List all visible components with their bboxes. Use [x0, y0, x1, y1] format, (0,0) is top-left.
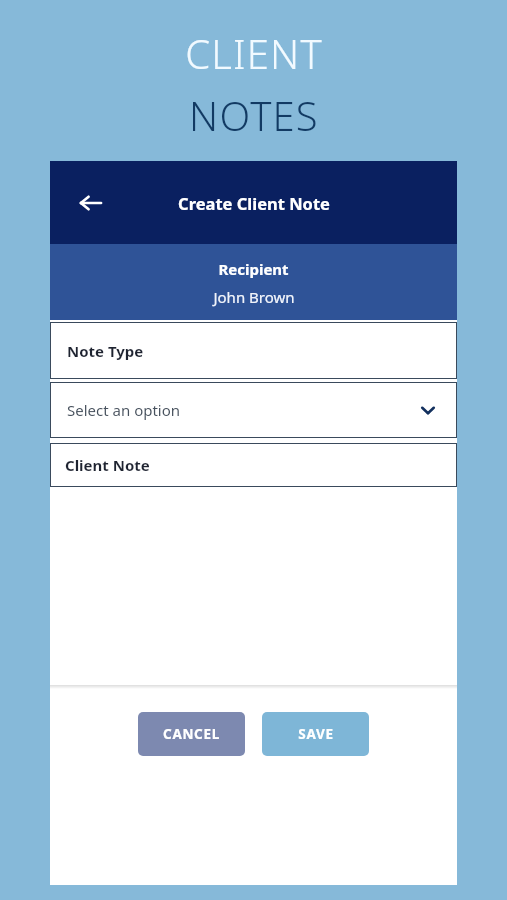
staticText: Select an option — [67, 400, 181, 420]
button[interactable]: CANCEL — [138, 712, 245, 756]
staticText: CLIENT — [185, 26, 323, 80]
button[interactable]: Note Type — [50, 322, 457, 379]
staticText: John Brown — [213, 287, 295, 307]
staticText: Note Type — [67, 341, 144, 361]
button[interactable]: SAVE — [262, 712, 369, 756]
staticText: Create Client Note — [178, 192, 330, 214]
staticText: CANCEL — [163, 725, 220, 743]
staticText: Recipient — [218, 259, 289, 279]
staticText: NOTES — [189, 88, 319, 142]
button[interactable]: Select an option — [50, 382, 457, 438]
button[interactable]: Back — [68, 180, 114, 226]
staticText: SAVE — [298, 725, 334, 743]
staticText: Client Note — [65, 455, 150, 475]
button[interactable]: Client Note — [50, 443, 457, 487]
